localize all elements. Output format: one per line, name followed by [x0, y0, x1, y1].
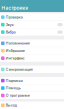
staticText: Интерфейс: [6, 56, 25, 60]
button[interactable]: Вибро: [0, 28, 64, 36]
staticText: Звук: [6, 22, 14, 27]
staticText: Настройки: [1, 5, 28, 11]
staticText: Выход: [6, 103, 17, 107]
button[interactable]: Напоминания: [0, 40, 64, 47]
button[interactable]: Звук: [0, 21, 64, 28]
button[interactable]: Синхронизация: [0, 66, 64, 73]
button[interactable]: Проверка: [0, 14, 64, 21]
staticText: Подписка: [6, 78, 23, 83]
staticText: Напоминания: [6, 41, 30, 45]
button[interactable]: Помощь: [0, 84, 64, 92]
staticText: О программе: [6, 93, 30, 98]
staticText: Вибро: [6, 30, 16, 34]
staticText: Проверка: [6, 15, 23, 19]
button[interactable]: Подписка: [0, 77, 64, 84]
button[interactable]: О программе: [0, 92, 64, 99]
button[interactable]: Избранное: [0, 47, 64, 54]
button[interactable]: Интерфейс: [0, 55, 64, 62]
staticText: Избранное: [6, 49, 25, 53]
staticText: Помощь: [6, 86, 21, 90]
staticText: Синхронизация: [6, 67, 33, 72]
button[interactable]: Выход: [0, 102, 64, 109]
